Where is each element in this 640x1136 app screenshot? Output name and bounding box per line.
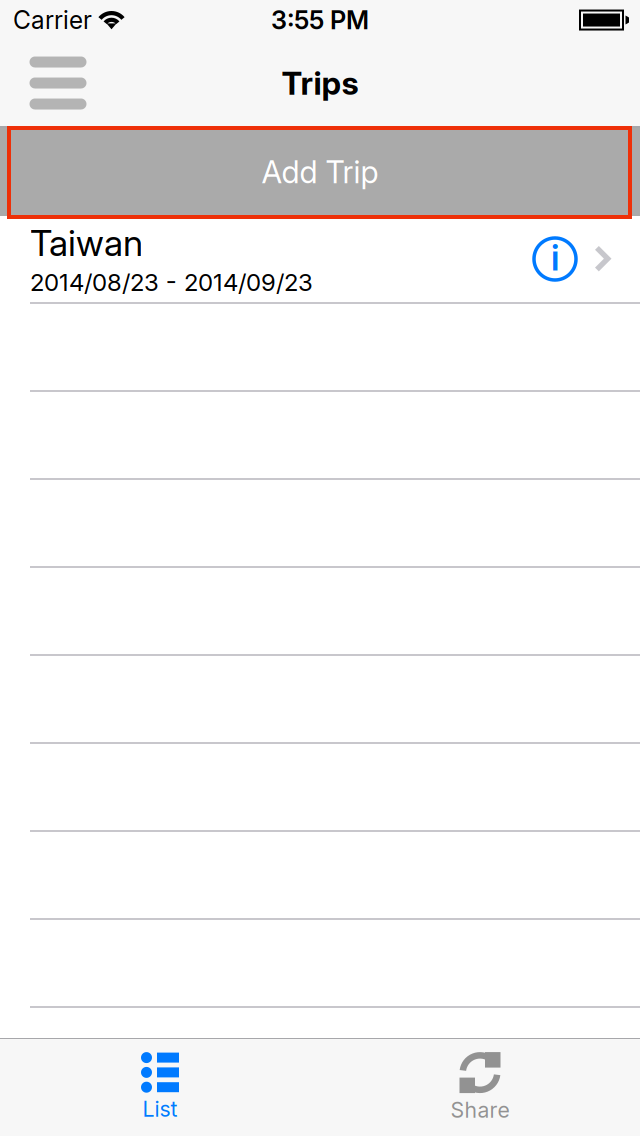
staticText: Taiwan	[30, 221, 143, 265]
button[interactable]: Share	[320, 1038, 640, 1136]
staticText: Add Trip	[261, 153, 378, 190]
staticText: 2014/08/23 - 2014/09/23	[30, 268, 313, 297]
button[interactable]: Menu	[10, 40, 106, 126]
button[interactable]: Add Trip	[0, 128, 640, 216]
staticText: Share	[450, 1097, 509, 1123]
staticText: Trips	[281, 64, 358, 102]
button[interactable]: Taiwan	[0, 216, 640, 302]
staticText: 3:55 PM	[271, 5, 369, 35]
staticText: i	[551, 237, 559, 279]
staticText: Carrier	[13, 5, 92, 35]
staticText: List	[142, 1096, 177, 1122]
button[interactable]: List	[0, 1038, 320, 1136]
